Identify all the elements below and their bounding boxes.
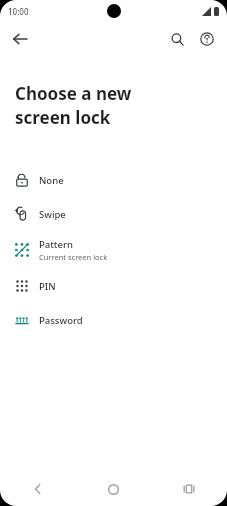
staticText: None <box>39 174 64 187</box>
staticText: Swipe <box>39 208 66 221</box>
staticText: PIN <box>39 280 56 293</box>
staticText: Pattern <box>39 238 73 251</box>
staticText: 10:00 <box>8 6 29 17</box>
button[interactable]: Back <box>0 472 75 506</box>
button[interactable]: Search <box>163 25 191 53</box>
button[interactable]: None <box>0 163 227 197</box>
button[interactable]: PIN <box>0 269 227 303</box>
button[interactable]: Recents <box>151 472 227 506</box>
staticText: Current screen lock <box>39 252 108 262</box>
button[interactable]: Swipe <box>0 197 227 231</box>
button[interactable]: Help <box>193 25 221 53</box>
button[interactable]: Password <box>0 303 227 337</box>
staticText: Choose a new screen lock <box>15 82 132 129</box>
button[interactable]: Pattern <box>0 231 227 269</box>
button[interactable]: Back <box>6 25 34 53</box>
staticText: Password <box>39 314 83 327</box>
button[interactable]: Home <box>75 472 151 506</box>
